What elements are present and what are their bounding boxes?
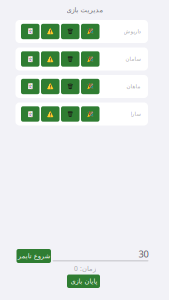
staticText: 🎉 <box>87 83 94 90</box>
staticText: سارا <box>130 111 140 117</box>
staticText: ⚠️ <box>47 28 54 35</box>
button[interactable]: امتیاز <box>81 51 99 67</box>
staticText: 🗑 <box>67 56 74 62</box>
staticText: 🃏 <box>27 111 34 117</box>
staticText: شروع تایمر <box>17 252 50 260</box>
staticText: ⚠️ <box>47 83 54 90</box>
button[interactable]: امتیاز <box>81 24 99 39</box>
staticText: 🎉 <box>87 111 94 117</box>
staticText: 🗑 <box>67 28 74 35</box>
button[interactable]: کارت <box>21 106 39 122</box>
button[interactable]: امتیاز <box>81 79 99 94</box>
button[interactable]: اخطار <box>41 24 59 39</box>
button[interactable]: پایان بازی <box>67 274 100 288</box>
button[interactable]: کارت <box>21 79 39 94</box>
staticText: سامان <box>125 56 140 62</box>
staticText: پایان بازی <box>70 277 97 285</box>
button[interactable]: شروع تایمر <box>16 249 51 263</box>
staticText: 🎉 <box>87 56 94 62</box>
staticText: 🃏 <box>27 28 34 35</box>
staticText: 🗑 <box>67 83 74 90</box>
staticText: 🎉 <box>87 28 94 35</box>
button[interactable]: اخطار <box>41 51 59 67</box>
button[interactable]: حذف <box>61 106 79 122</box>
staticText: مدیریت بازی <box>66 6 103 14</box>
staticText: ماهان <box>126 83 140 90</box>
button[interactable]: حذف <box>61 79 79 94</box>
staticText: 30 <box>138 248 148 260</box>
staticText: زمان: 0 <box>73 264 95 273</box>
staticText: 🃏 <box>27 56 34 62</box>
staticText: 🗑 <box>67 111 74 117</box>
staticText: ⚠️ <box>47 111 54 117</box>
button[interactable]: اخطار <box>41 106 59 122</box>
button[interactable]: حذف <box>61 51 79 67</box>
button[interactable]: امتیاز <box>81 106 99 122</box>
staticText: داریوش <box>123 28 140 35</box>
button[interactable]: کارت <box>21 24 39 39</box>
button[interactable]: حذف <box>61 24 79 39</box>
staticText: ⚠️ <box>47 56 54 62</box>
button[interactable]: کارت <box>21 51 39 67</box>
staticText: 🃏 <box>27 83 34 90</box>
button[interactable]: اخطار <box>41 79 59 94</box>
